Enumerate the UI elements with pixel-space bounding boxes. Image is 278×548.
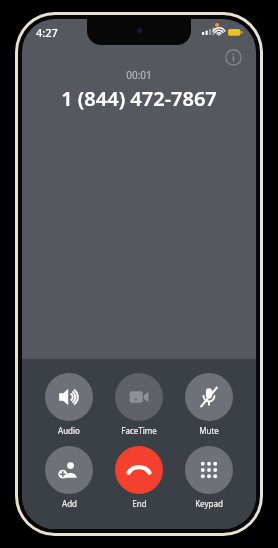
staticText: Mute xyxy=(199,425,219,436)
staticText: Audio xyxy=(58,425,80,436)
button[interactable]: Keypad xyxy=(180,446,238,509)
staticText: Add xyxy=(62,498,77,509)
button[interactable]: Call info xyxy=(225,49,242,66)
staticText: 1 (844) 472-7867 xyxy=(22,85,256,112)
staticText: FaceTime xyxy=(121,425,157,436)
button[interactable]: Add xyxy=(40,446,98,509)
staticText: Keypad xyxy=(195,498,223,509)
button[interactable]: End xyxy=(110,446,168,509)
button[interactable]: Audio xyxy=(40,373,98,436)
staticText: End xyxy=(132,498,147,509)
staticText: 4:27 xyxy=(36,25,58,40)
button[interactable]: FaceTime xyxy=(110,373,168,436)
staticText: 00:01 xyxy=(22,68,256,82)
button[interactable]: Mute xyxy=(180,373,238,436)
